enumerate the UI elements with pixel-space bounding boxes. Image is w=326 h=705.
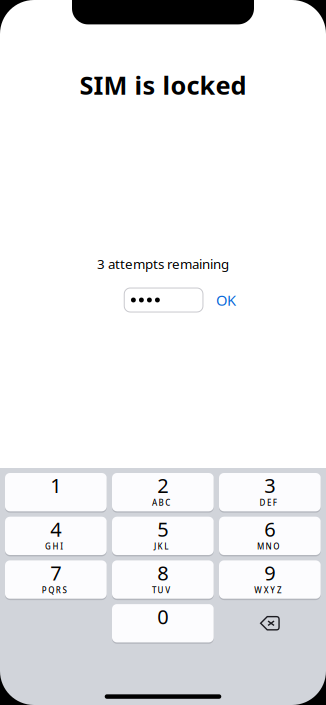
staticText: 0	[157, 603, 168, 630]
staticText: 1	[50, 472, 61, 499]
button[interactable]: OK	[211, 288, 241, 312]
button[interactable]: 6	[219, 517, 321, 555]
staticText: 4	[50, 516, 61, 542]
staticText: OK	[216, 290, 236, 310]
button[interactable]: Delete	[219, 604, 321, 642]
staticText: WXYZ	[254, 585, 286, 595]
button[interactable]: 4	[5, 517, 107, 555]
staticText: 3	[264, 472, 275, 499]
staticText: DEF	[259, 497, 280, 508]
staticText: 7	[50, 559, 61, 586]
staticText: TUV	[152, 585, 174, 595]
button[interactable]: 5	[112, 517, 214, 555]
staticText: 3 attempts remaining	[97, 255, 229, 273]
staticText: SIM is locked	[79, 68, 246, 102]
staticText: MNO	[257, 541, 283, 552]
staticText: 2	[157, 472, 168, 499]
button[interactable]: 8	[112, 560, 214, 599]
button[interactable]: 0	[112, 604, 214, 642]
button[interactable]: 3	[219, 473, 321, 511]
staticText: JKL	[154, 541, 172, 552]
staticText: 9	[264, 559, 275, 586]
staticText: GHI	[45, 541, 67, 552]
button[interactable]: 2	[112, 473, 214, 511]
button[interactable]: 1	[5, 473, 107, 511]
button[interactable]: 7	[5, 560, 107, 599]
button[interactable]: 9	[219, 560, 321, 599]
staticText: 6	[264, 516, 275, 542]
staticText: PQRS	[42, 585, 70, 595]
staticText: ABC	[152, 497, 174, 508]
staticText: 8	[157, 559, 168, 586]
staticText: 5	[157, 516, 168, 542]
